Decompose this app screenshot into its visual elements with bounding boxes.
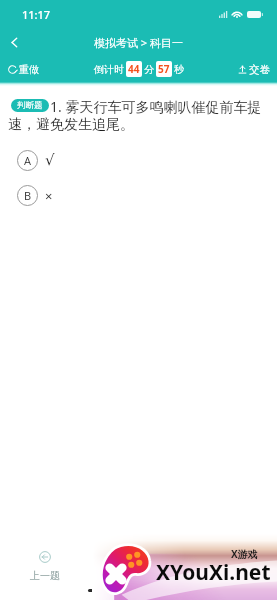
- staticText: √: [45, 151, 55, 168]
- staticText: X游戏: [231, 547, 258, 561]
- staticText: 1. 雾天行车可多鸣喇叭催促前车提速，避免发生追尾。: [8, 97, 273, 133]
- button[interactable]: Back: [0, 28, 28, 56]
- staticText: 交卷: [249, 63, 270, 76]
- staticText: 11:17: [22, 7, 51, 22]
- staticText: 分: [144, 63, 154, 76]
- staticText: 44: [128, 62, 140, 76]
- staticText: 重做: [19, 63, 39, 76]
- button[interactable]: 重做: [8, 63, 39, 76]
- staticText: 模拟考试 > 科目一: [94, 35, 184, 50]
- staticText: XYouXi.net: [156, 558, 271, 587]
- staticText: 判断题: [17, 100, 43, 111]
- staticText: ×: [45, 187, 53, 205]
- staticText: B: [24, 188, 32, 203]
- staticText: 57: [158, 62, 170, 76]
- button[interactable]: B: [0, 185, 277, 206]
- staticText: 秒: [174, 63, 184, 76]
- button[interactable]: A: [0, 150, 277, 171]
- button[interactable]: XYouXi.net: [92, 534, 277, 600]
- button[interactable]: 交卷: [238, 63, 270, 76]
- staticText: 上一题: [30, 569, 60, 582]
- staticText: 倒计时: [94, 63, 124, 76]
- button[interactable]: 上一题: [30, 551, 60, 582]
- staticText: A: [24, 153, 32, 168]
